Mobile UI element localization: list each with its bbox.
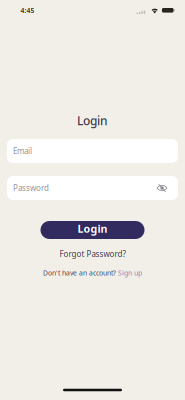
- staticText: Login: [77, 221, 107, 236]
- staticText: Email: [13, 146, 32, 156]
- staticText: Sign up: [118, 269, 142, 277]
- button[interactable]: Email: [7, 139, 178, 163]
- staticText: Forgot Password?: [59, 249, 125, 259]
- staticText: Login: [77, 112, 108, 128]
- button[interactable]: Password: [7, 176, 178, 200]
- button[interactable]: Show password: [155, 181, 169, 195]
- button[interactable]: Sign up: [118, 269, 142, 277]
- staticText: Don't have an account?: [43, 269, 116, 277]
- staticText: 4:45: [20, 6, 34, 15]
- button[interactable]: Forgot Password?: [59, 249, 125, 259]
- button[interactable]: Login: [40, 221, 144, 239]
- staticText: Password: [13, 183, 49, 193]
